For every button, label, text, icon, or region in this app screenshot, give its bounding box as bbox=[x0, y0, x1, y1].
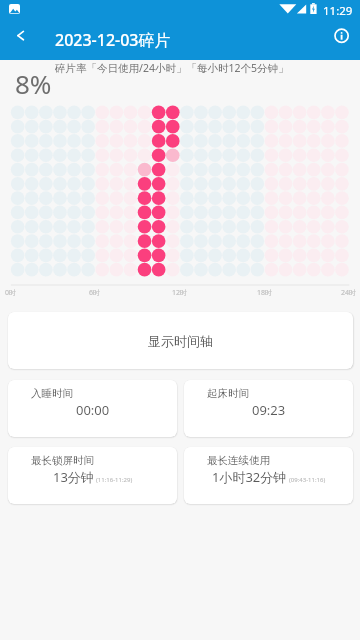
staticText: (11:16-11:29) bbox=[96, 476, 133, 484]
staticText: 09:23 bbox=[252, 401, 286, 419]
staticText: 0时 bbox=[5, 288, 17, 298]
button[interactable]: Info bbox=[329, 24, 354, 48]
staticText: 11:29 bbox=[323, 3, 353, 19]
staticText: 碎片率「今日使用/24小时」「每小时12个5分钟」 bbox=[55, 61, 289, 75]
staticText: 最长锁屏时间 bbox=[31, 454, 94, 467]
button[interactable]: 最长连续使用 bbox=[184, 447, 353, 504]
staticText: 6时 bbox=[89, 288, 101, 298]
staticText: 12时 bbox=[172, 288, 188, 298]
staticText: 2023-12-03碎片 bbox=[55, 29, 171, 51]
button[interactable]: 显示时间轴 bbox=[8, 312, 353, 369]
staticText: 起床时间 bbox=[207, 387, 249, 400]
button[interactable]: 最长锁屏时间 bbox=[8, 447, 177, 504]
staticText: 18时 bbox=[257, 288, 273, 298]
staticText: 8% bbox=[15, 66, 52, 101]
staticText: 00:00 bbox=[76, 401, 110, 419]
staticText: 24时 bbox=[341, 288, 357, 298]
staticText: 13分钟 bbox=[53, 468, 94, 486]
staticText: 最长连续使用 bbox=[207, 454, 270, 467]
staticText: 显示时间轴 bbox=[148, 333, 213, 349]
staticText: 入睡时间 bbox=[31, 387, 73, 400]
button[interactable]: 起床时间 bbox=[184, 380, 353, 437]
button[interactable]: Back bbox=[6, 24, 35, 48]
staticText: 1小时32分钟 bbox=[212, 468, 287, 486]
button[interactable]: 入睡时间 bbox=[8, 380, 177, 437]
staticText: (09:43-11:16) bbox=[289, 476, 326, 484]
